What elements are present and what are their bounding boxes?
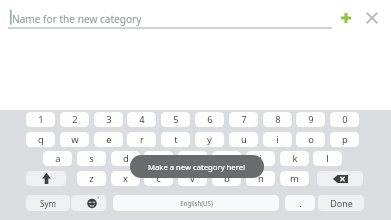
button[interactable]: f (144, 151, 173, 166)
staticText: n (258, 172, 264, 185)
staticText: j (259, 152, 262, 165)
button[interactable]: k (280, 151, 309, 166)
button[interactable]: Close (359, 6, 385, 32)
button[interactable]: p (330, 132, 359, 147)
button[interactable]: r (127, 132, 156, 147)
staticText: 8 (275, 113, 281, 126)
staticText: y (207, 133, 212, 146)
button[interactable]: h (212, 151, 241, 166)
button[interactable]: 4 (127, 112, 156, 127)
button[interactable]: t (161, 132, 190, 147)
staticText: 5 (173, 113, 179, 126)
staticText: t (174, 133, 178, 146)
button[interactable]: u (229, 132, 258, 147)
button[interactable]: 6 (195, 112, 224, 127)
staticText: f (157, 152, 161, 165)
staticText: k (292, 152, 298, 165)
staticText: Done (330, 197, 353, 209)
staticText: w (71, 133, 79, 146)
button[interactable]: c (144, 171, 173, 186)
button[interactable]: English(US) (113, 195, 279, 211)
button[interactable]: Emoji (71, 195, 106, 211)
button[interactable]: x (111, 171, 140, 186)
button[interactable]: 3 (94, 112, 123, 127)
button[interactable]: Make a new category here! (130, 155, 264, 178)
staticText: c (156, 172, 161, 185)
staticText: 4 (139, 113, 145, 126)
button[interactable]: w (60, 132, 89, 147)
button[interactable]: l (313, 151, 342, 166)
staticText: 7 (241, 113, 247, 126)
staticText: l (326, 152, 329, 165)
staticText: d (123, 152, 129, 165)
staticText: 6 (207, 113, 213, 126)
staticText: x (123, 172, 128, 185)
button[interactable]: Add category (333, 6, 359, 32)
staticText: 9 (308, 113, 314, 126)
button[interactable]: o (296, 132, 325, 147)
button[interactable]: Backspace (317, 171, 363, 186)
staticText: q (38, 133, 44, 146)
button[interactable]: 9 (296, 112, 325, 127)
staticText: 3 (106, 113, 112, 126)
staticText: o (308, 133, 314, 146)
staticText: z (89, 172, 94, 185)
staticText: 2 (72, 113, 78, 126)
button[interactable]: d (111, 151, 140, 166)
button[interactable]: Done (318, 195, 364, 211)
staticText: . (299, 197, 302, 210)
button[interactable]: g (178, 151, 207, 166)
button[interactable]: y (195, 132, 224, 147)
staticText: 1 (38, 113, 44, 126)
staticText: s (89, 152, 94, 165)
button[interactable]: m (280, 171, 309, 186)
staticText: English(US) (180, 199, 213, 207)
staticText: 0 (342, 113, 348, 126)
staticText: i (276, 133, 279, 146)
staticText: p (342, 133, 348, 146)
staticText: v (190, 172, 195, 185)
button[interactable]: 8 (263, 112, 292, 127)
button[interactable]: . (285, 195, 315, 211)
button[interactable]: q (26, 132, 55, 147)
staticText: r (140, 133, 144, 146)
button[interactable]: i (263, 132, 292, 147)
staticText: Sym (40, 198, 56, 209)
button[interactable]: a (43, 151, 72, 166)
button[interactable]: e (94, 132, 123, 147)
button[interactable]: 2 (60, 112, 89, 127)
staticText: m (290, 172, 299, 185)
button[interactable]: z (77, 171, 106, 186)
staticText: a (55, 152, 61, 165)
button[interactable]: Sym (26, 195, 70, 211)
button[interactable]: 7 (229, 112, 258, 127)
button[interactable]: j (246, 151, 275, 166)
button[interactable]: s (77, 151, 106, 166)
button[interactable]: b (212, 171, 241, 186)
button[interactable]: v (178, 171, 207, 186)
staticText: g (190, 152, 196, 165)
button[interactable]: Shift (26, 171, 66, 186)
staticText: b (224, 172, 230, 185)
button[interactable]: 5 (161, 112, 190, 127)
staticText: e (106, 133, 112, 146)
button[interactable]: 1 (26, 112, 55, 127)
staticText: Make a new category here! (148, 162, 246, 172)
staticText: u (241, 133, 247, 146)
button[interactable]: 0 (330, 112, 359, 127)
button[interactable]: n (246, 171, 275, 186)
staticText: Name for the new category (12, 12, 142, 26)
staticText: h (224, 152, 230, 165)
